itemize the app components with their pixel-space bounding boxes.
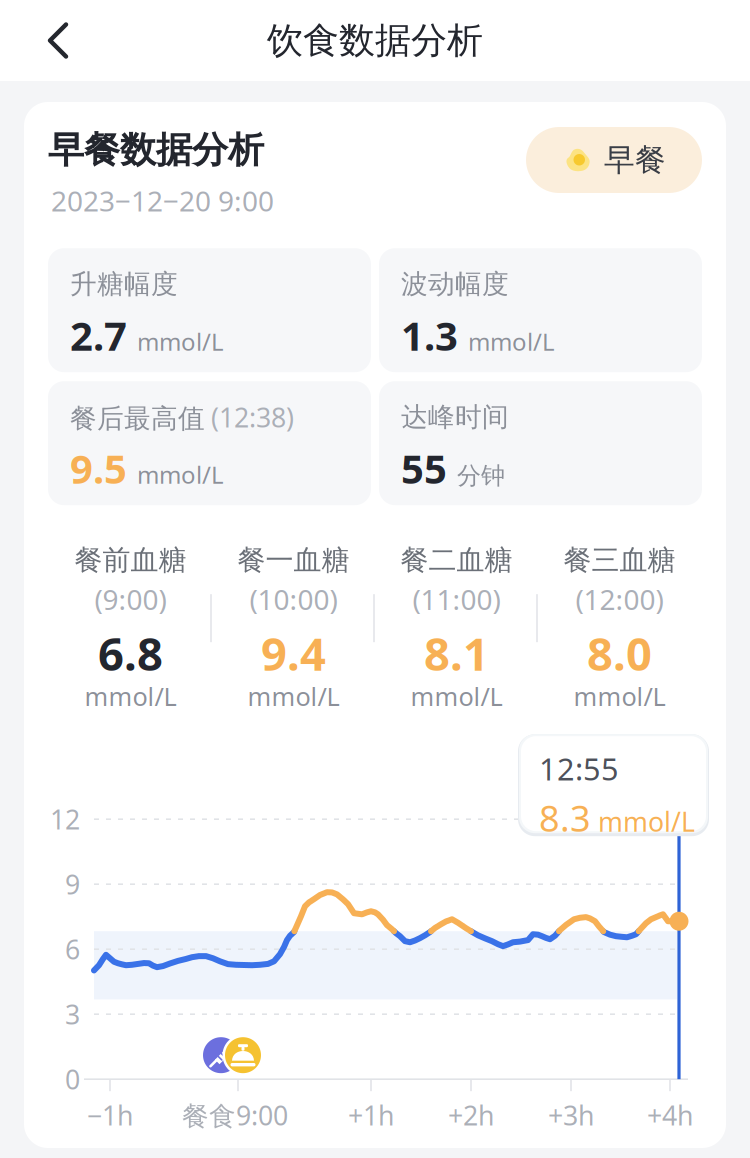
staticText: 波动幅度 [401,268,509,301]
staticText: 8.3 [539,794,591,842]
staticText: +4h [647,1097,693,1133]
staticText: 6 [65,931,80,967]
staticText: 9.4 [261,623,326,683]
staticText: (9:00) [94,581,166,618]
staticText: 6.8 [98,623,163,683]
staticText: mmol/L [137,458,224,490]
staticText: 餐三血糖 [563,543,675,577]
staticText: 餐食9:00 [182,1097,288,1133]
staticText: (11:00) [412,581,500,618]
staticText: mmol/L [573,679,665,713]
staticText: 餐后最高值 [70,402,205,435]
staticText: mmol/L [468,325,555,357]
staticText: +2h [448,1097,494,1133]
staticText: (12:38) [211,399,294,435]
staticText: 8.0 [587,623,652,683]
staticText: 餐一血糖 [237,543,349,577]
staticText: 分钟 [457,461,505,490]
staticText: 2023−12−20 9:00 [51,182,274,219]
staticText: (12:00) [575,581,663,618]
staticText: 0 [65,1061,80,1097]
staticText: 9.5 [70,442,127,495]
staticText: 早餐数据分析 [48,128,264,172]
staticText: 12:55 [539,748,619,789]
staticText: +3h [548,1097,594,1133]
staticText: mmol/L [247,679,339,713]
staticText: +1h [348,1097,394,1133]
staticText: 1.3 [401,309,458,362]
staticText: mmol/L [84,679,176,713]
staticText: 3 [65,996,80,1032]
staticText: 饮食数据分析 [267,18,483,63]
staticText: 8.1 [424,623,489,683]
staticText: 达峰时间 [401,401,509,434]
staticText: 早餐 [604,141,666,179]
staticText: −1h [87,1097,133,1133]
staticText: mmol/L [410,679,502,713]
staticText: 餐前血糖 [74,543,186,577]
staticText: 12 [50,801,80,837]
button[interactable]: Back [32,15,88,65]
staticText: mmol/L [598,804,695,839]
staticText: 9 [65,866,80,902]
staticText: mmol/L [137,325,224,357]
staticText: (10:00) [249,581,337,618]
staticText: 55 [401,442,447,495]
staticText: 2.7 [70,309,127,362]
staticText: 升糖幅度 [70,268,178,301]
button[interactable]: 早餐 [526,120,702,193]
staticText: 餐二血糖 [400,543,512,577]
